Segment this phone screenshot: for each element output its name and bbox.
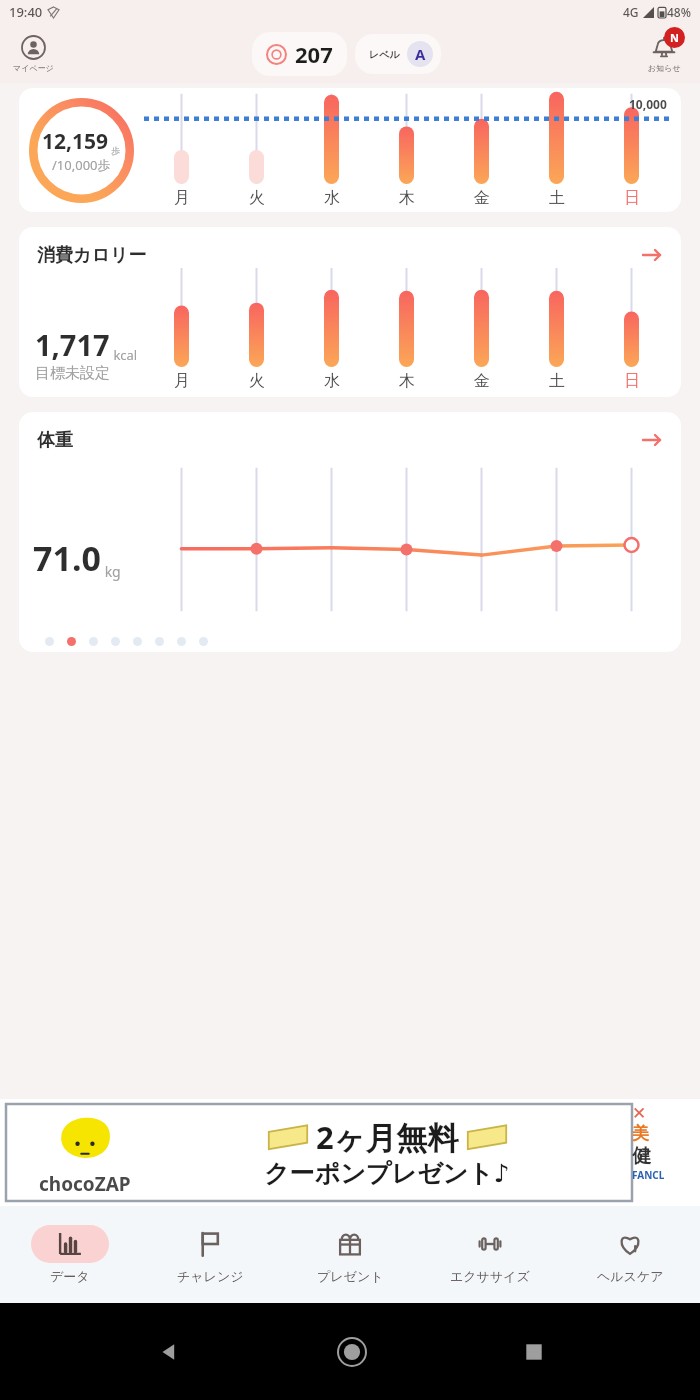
button[interactable]: ヘルスケア bbox=[560, 1206, 700, 1303]
staticText: kcal bbox=[110, 346, 138, 364]
staticText: 10,000 bbox=[629, 96, 667, 112]
button[interactable]: チャレンジ bbox=[140, 1206, 280, 1303]
staticText: 48% bbox=[667, 4, 691, 20]
staticText: 歩 bbox=[109, 144, 121, 156]
staticText: 207 bbox=[295, 39, 333, 69]
staticText: ✕ bbox=[632, 1103, 647, 1123]
staticText: 木 bbox=[399, 188, 415, 208]
button[interactable]: 消費カロリー bbox=[19, 227, 681, 397]
staticText: 水 bbox=[324, 371, 340, 391]
button[interactable]: 体重 bbox=[19, 412, 681, 652]
staticText: プレゼント bbox=[317, 1268, 384, 1284]
staticText: A bbox=[415, 44, 426, 64]
staticText: 1,717 bbox=[35, 325, 110, 364]
staticText: 月 bbox=[174, 371, 190, 391]
staticText: 健 bbox=[632, 1144, 651, 1168]
button[interactable]: データ bbox=[0, 1206, 140, 1303]
staticText: 土 bbox=[549, 371, 565, 391]
staticText: 美 bbox=[632, 1123, 649, 1144]
staticText: クーポンプレゼント♪ bbox=[264, 1158, 510, 1189]
button[interactable]: 207 bbox=[252, 32, 347, 76]
staticText: 2ヶ月無料 bbox=[316, 1116, 459, 1158]
staticText: kg bbox=[101, 562, 121, 581]
button[interactable]: 詳細 bbox=[639, 242, 665, 268]
staticText: 日 bbox=[624, 188, 640, 208]
staticText: レベル bbox=[369, 48, 400, 61]
staticText: 火 bbox=[249, 371, 265, 391]
button[interactable]: マイページ bbox=[0, 24, 66, 83]
staticText: 木 bbox=[399, 371, 415, 391]
staticText: FANCL bbox=[632, 1168, 665, 1182]
staticText: お知らせ bbox=[648, 63, 681, 73]
staticText: マイページ bbox=[13, 63, 54, 73]
staticText: 19:40 bbox=[9, 3, 43, 21]
staticText: 月 bbox=[174, 188, 190, 208]
button[interactable]: chocoZAP bbox=[6, 1104, 632, 1201]
staticText: 4G bbox=[623, 4, 639, 20]
staticText: 金 bbox=[474, 371, 490, 391]
staticText: データ bbox=[50, 1268, 90, 1284]
button[interactable]: 詳細 bbox=[639, 427, 665, 453]
staticText: エクササイズ bbox=[450, 1268, 530, 1284]
button[interactable]: レベル bbox=[355, 34, 441, 74]
button[interactable]: 12,159 bbox=[19, 88, 681, 212]
button[interactable]: プレゼント bbox=[280, 1206, 420, 1303]
button[interactable]: お知らせ bbox=[628, 24, 700, 83]
staticText: チャレンジ bbox=[177, 1268, 244, 1284]
staticText: 金 bbox=[474, 188, 490, 208]
staticText: 12,159 bbox=[42, 127, 109, 156]
staticText: 消費カロリー bbox=[37, 244, 147, 267]
staticText: 土 bbox=[549, 188, 565, 208]
staticText: chocoZAP bbox=[39, 1171, 131, 1197]
staticText: 日 bbox=[624, 371, 640, 391]
staticText: 体重 bbox=[37, 429, 73, 452]
staticText: 71.0 bbox=[33, 535, 101, 581]
staticText: /10,000歩 bbox=[52, 156, 111, 174]
staticText: 火 bbox=[249, 188, 265, 208]
staticText: ヘルスケア bbox=[597, 1268, 664, 1284]
button[interactable]: エクササイズ bbox=[420, 1206, 560, 1303]
staticText: 水 bbox=[324, 188, 340, 208]
staticText: 目標未設定 bbox=[35, 364, 110, 383]
staticText: N bbox=[670, 30, 679, 45]
